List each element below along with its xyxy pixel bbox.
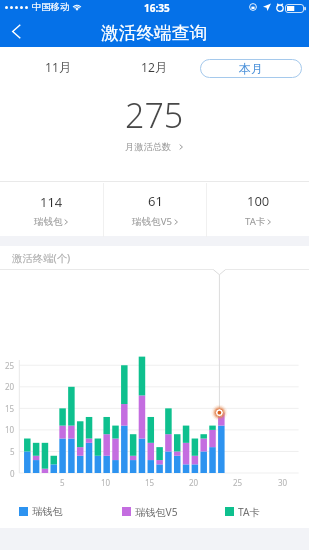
button[interactable]: 瑞钱包V5 <box>122 495 178 528</box>
staticText: 10 <box>101 477 111 488</box>
staticText: 5 <box>10 446 15 457</box>
staticText: 瑞钱包V5 <box>135 505 178 519</box>
button[interactable]: 11月 <box>10 47 106 87</box>
staticText: 15 <box>5 403 15 414</box>
staticText: 15 <box>145 477 155 488</box>
staticText: 5 <box>60 477 65 488</box>
staticText: TA卡 <box>238 505 260 519</box>
button[interactable]: 本月 <box>200 59 302 78</box>
staticText: TA卡 <box>245 215 266 228</box>
staticText: 12月 <box>141 59 168 76</box>
button[interactable]: 100 <box>207 182 309 238</box>
staticText: 20 <box>5 381 15 392</box>
staticText: 275 <box>125 92 184 138</box>
button[interactable]: 瑞钱包 <box>19 495 63 528</box>
button[interactable]: Back <box>2 17 30 45</box>
staticText: 瑞钱包V5 <box>132 215 173 228</box>
button[interactable]: 月激活总数 <box>125 141 184 153</box>
staticText: 0 <box>10 468 15 479</box>
staticText: 10 <box>5 424 15 435</box>
staticText: 本月 <box>239 61 263 76</box>
staticText: 16:35 <box>144 1 170 15</box>
staticText: 激活终端(个) <box>12 251 71 265</box>
staticText: 61 <box>148 192 163 210</box>
button[interactable]: TA卡 <box>225 495 260 528</box>
staticText: 瑞钱包 <box>34 216 63 228</box>
staticText: 20 <box>189 477 199 488</box>
staticText: 月激活总数 <box>125 141 171 153</box>
staticText: 激活终端查询 <box>101 22 208 44</box>
staticText: 100 <box>247 192 270 210</box>
staticText: 瑞钱包 <box>32 505 63 518</box>
staticText: 30 <box>278 477 288 488</box>
staticText: 25 <box>5 360 15 371</box>
staticText: 中国移动 <box>32 1 70 13</box>
staticText: 25 <box>233 477 243 488</box>
button[interactable]: 114 <box>0 182 103 238</box>
staticText: 114 <box>40 193 63 211</box>
staticText: 11月 <box>45 59 72 76</box>
button[interactable]: 61 <box>104 182 206 238</box>
button[interactable]: 12月 <box>106 47 202 87</box>
